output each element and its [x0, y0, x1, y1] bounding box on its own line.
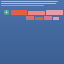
button[interactable]	[53, 17, 59, 20]
button[interactable]: App icon	[4, 10, 9, 15]
button[interactable]	[35, 17, 43, 20]
button[interactable]	[11, 10, 27, 15]
button[interactable]	[26, 16, 34, 20]
button[interactable]	[44, 16, 52, 20]
button[interactable]	[28, 11, 45, 15]
button[interactable]	[46, 10, 63, 15]
button[interactable]	[0, 0, 64, 8]
